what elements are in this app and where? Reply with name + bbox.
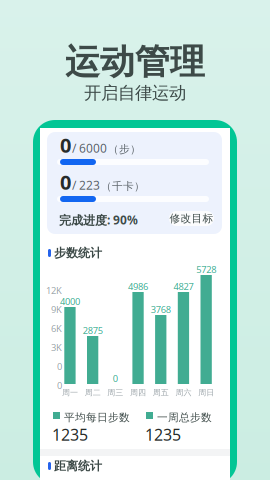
staticText: （千卡）: [101, 180, 145, 193]
staticText: 0: [60, 169, 71, 195]
button[interactable]: 修改目标: [169, 211, 214, 226]
staticText: 距离统计: [54, 459, 102, 473]
staticText: 0: [60, 132, 71, 158]
staticText: 完成进度: 90%: [59, 212, 138, 228]
staticText: 1235: [145, 424, 181, 445]
staticText: 周三: [107, 388, 123, 397]
staticText: 2875: [83, 324, 103, 337]
staticText: 0: [57, 360, 62, 373]
staticText: 3K: [51, 341, 62, 354]
staticText: / 223: [72, 177, 100, 193]
staticText: 一周总步数: [157, 411, 212, 424]
staticText: 平均每日步数: [64, 411, 130, 424]
staticText: 运动管理: [65, 41, 205, 83]
staticText: 开启自律运动: [84, 82, 186, 104]
staticText: （步）: [108, 143, 141, 156]
staticText: 5728: [196, 263, 216, 276]
staticText: 4986: [128, 280, 148, 293]
staticText: 修改目标: [169, 212, 213, 225]
staticText: 周一: [62, 388, 78, 397]
staticText: 12K: [46, 284, 62, 297]
staticText: 1235: [52, 424, 88, 445]
staticText: 9K: [51, 303, 62, 316]
staticText: 周五: [153, 388, 169, 397]
staticText: 步数统计: [54, 246, 102, 260]
staticText: 周日: [198, 388, 214, 397]
staticText: 4827: [173, 280, 193, 293]
staticText: / 6000: [72, 140, 107, 156]
staticText: 4000: [60, 295, 80, 308]
staticText: 3768: [151, 303, 171, 316]
staticText: 6K: [51, 322, 62, 335]
staticText: 周四: [130, 388, 146, 397]
staticText: 0: [57, 379, 62, 392]
staticText: 0: [113, 372, 118, 385]
staticText: 周六: [175, 388, 191, 397]
staticText: 周二: [85, 388, 101, 397]
